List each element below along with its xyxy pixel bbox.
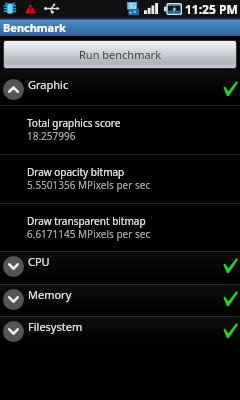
staticText: Total graphics score [27,116,121,130]
button[interactable]: Graphic [0,70,240,105]
staticText: 18.257996 [27,129,76,143]
staticText: Memory [28,287,72,302]
staticText: CPU [28,254,50,269]
staticText: 6.6171145 MPixels per sec [27,227,151,241]
button[interactable]: Memory [0,285,240,316]
button[interactable]: Filesystem [0,317,240,349]
button[interactable]: Draw transparent bitmap [0,204,240,251]
button[interactable]: CPU [0,252,240,284]
staticText: Benchmark [3,20,66,35]
staticText: Draw transparent bitmap [27,214,146,228]
button[interactable]: Total graphics score [0,106,240,154]
button[interactable]: Draw opacity bitmap [0,155,240,203]
staticText: Run benchmark [79,47,162,62]
staticText: 11:25 PM [185,1,238,17]
staticText: Graphic [28,77,69,92]
staticText: Filesystem [28,319,83,334]
staticText: 5.5501356 MPixels per sec [27,178,151,192]
staticText: Draw opacity bitmap [27,165,125,179]
button[interactable]: Run benchmark [4,41,236,68]
